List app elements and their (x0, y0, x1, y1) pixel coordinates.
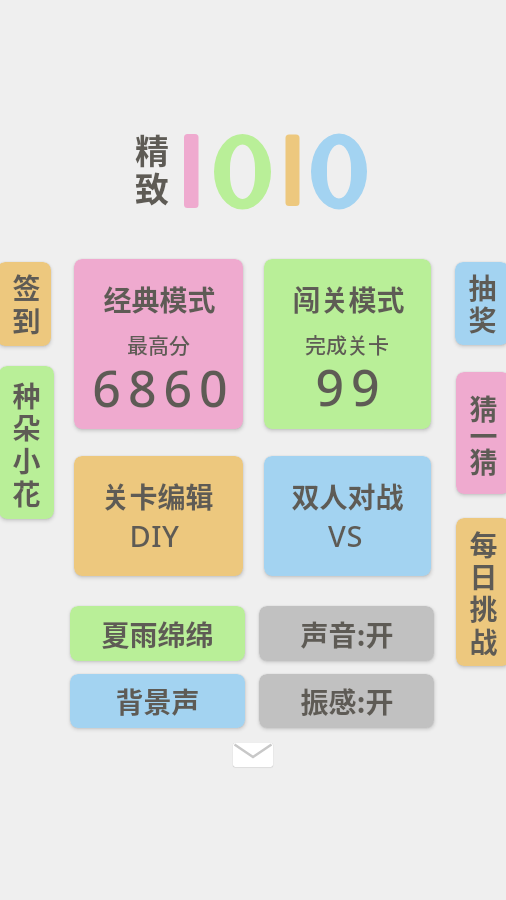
staticText: 抽 (468, 267, 497, 308)
staticText: 签 (12, 267, 41, 308)
staticText: 每 (469, 524, 498, 565)
button[interactable]: 抽奖 (455, 262, 506, 345)
staticText: 小 (12, 440, 41, 481)
staticText: 种 (12, 375, 41, 416)
button[interactable]: 签到 (0, 262, 51, 346)
staticText: 战 (469, 621, 498, 662)
button[interactable]: 经典模式 最高分 6860 (74, 259, 243, 429)
staticText: 花 (12, 473, 41, 514)
button[interactable]: 背景声 (70, 674, 245, 728)
staticText: 一 (469, 415, 498, 456)
staticText: 6860 (92, 354, 235, 422)
staticText: 声音:开 (300, 614, 394, 655)
button[interactable]: 声音:开 (259, 606, 434, 661)
button[interactable]: 猜一猜 (456, 372, 506, 494)
staticText: 猜 (469, 388, 498, 429)
staticText: DIY (129, 516, 180, 555)
staticText: 振感:开 (300, 681, 394, 722)
staticText: 致 (135, 163, 169, 211)
button[interactable]: 振感:开 (259, 674, 434, 728)
staticText: 99 (315, 353, 387, 421)
staticText: 闯关模式 (292, 279, 405, 320)
staticText: 精 (135, 125, 169, 173)
button[interactable]: 关卡编辑 DIY (74, 456, 243, 576)
staticText: 挑 (469, 588, 498, 629)
button[interactable]: Messages (233, 743, 273, 767)
staticText: VS (328, 516, 363, 555)
staticText: 关卡编辑 (101, 476, 214, 517)
staticText: 背景声 (115, 681, 200, 722)
staticText: 最高分 (127, 329, 190, 359)
button[interactable]: 闯关模式 完成关卡 99 (264, 259, 431, 429)
staticText: 日 (469, 556, 498, 597)
button[interactable]: 夏雨绵绵 (70, 606, 245, 661)
staticText: 经典模式 (103, 279, 216, 320)
button[interactable]: 每日挑战 (456, 518, 506, 666)
button[interactable]: 种朵小花 (0, 366, 54, 519)
staticText: 双人对战 (291, 476, 404, 517)
staticText: 完成关卡 (305, 329, 389, 359)
button[interactable]: 双人对战 VS (264, 456, 431, 576)
staticText: 到 (12, 300, 41, 341)
staticText: 猜 (469, 441, 498, 482)
staticText: 朵 (12, 407, 41, 448)
staticText: 奖 (468, 299, 497, 340)
staticText: 夏雨绵绵 (101, 614, 214, 655)
